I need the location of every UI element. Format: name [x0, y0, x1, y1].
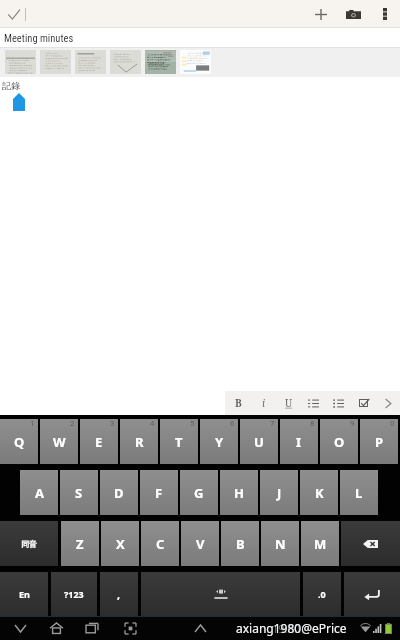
button[interactable]: Checklist [351, 391, 376, 415]
staticText: Z [76, 535, 84, 553]
staticText: 19:00 [272, 621, 301, 636]
button[interactable]: More formatting [376, 391, 400, 415]
button[interactable]: Space [141, 572, 300, 616]
button[interactable]: En [0, 572, 48, 616]
staticText: 3 [110, 419, 115, 428]
button[interactable]: K [300, 470, 338, 515]
button[interactable]: I [280, 419, 318, 464]
staticText: U [285, 396, 293, 410]
button[interactable]: B [221, 521, 259, 566]
button[interactable] [5, 50, 36, 74]
button[interactable] [145, 50, 176, 74]
button[interactable]: F [140, 470, 178, 515]
button[interactable]: A [20, 470, 58, 515]
staticText: B [235, 396, 242, 410]
staticText: 5 [190, 419, 195, 428]
button[interactable]: H [220, 470, 258, 515]
staticText: 7 [270, 419, 275, 428]
staticText: i [262, 396, 266, 410]
staticText: L [355, 484, 363, 502]
staticText: Meeting minutes [4, 32, 74, 44]
staticText: A [35, 484, 44, 502]
staticText: 2 [70, 419, 75, 428]
button[interactable]: J [260, 470, 298, 515]
staticText: E [95, 433, 103, 451]
button[interactable]: O [320, 419, 358, 464]
button[interactable] [180, 50, 211, 74]
staticText: W [53, 433, 66, 451]
staticText: 8 [310, 419, 315, 428]
staticText: G [194, 484, 204, 502]
staticText: R [135, 433, 144, 451]
button[interactable]: ?123 [51, 572, 97, 616]
staticText: 0 [390, 419, 395, 428]
button[interactable]: Bold [226, 391, 251, 415]
button[interactable]: .0 [303, 572, 341, 616]
button[interactable]: C [141, 521, 179, 566]
button[interactable]: R [120, 419, 158, 464]
button[interactable]: Done [0, 0, 28, 28]
button[interactable]: Bulleted list [326, 391, 351, 415]
staticText: U [254, 433, 264, 451]
button[interactable]: Back [8, 616, 32, 640]
staticText: 6 [230, 419, 235, 428]
staticText: T [175, 433, 183, 451]
button[interactable]: Recents [80, 616, 104, 640]
staticText: .0 [318, 588, 326, 600]
staticText: Q [14, 433, 25, 451]
button[interactable]: Backspace [341, 521, 400, 566]
staticText: J [277, 484, 282, 502]
button[interactable]: P [360, 419, 398, 464]
staticText: C [156, 535, 165, 553]
button[interactable]: Add [305, 0, 337, 28]
staticText: H [234, 484, 244, 502]
button[interactable]: Underline [276, 391, 301, 415]
button[interactable]: L [340, 470, 378, 515]
button[interactable]: V [181, 521, 219, 566]
button[interactable] [110, 50, 141, 74]
button[interactable] [40, 50, 71, 74]
staticText: F [155, 484, 163, 502]
staticText: En [19, 588, 30, 600]
button[interactable]: Z [61, 521, 99, 566]
staticText: B [236, 535, 245, 553]
button[interactable]: Y [200, 419, 238, 464]
button[interactable]: Screenshot [118, 616, 142, 640]
staticText: I [296, 433, 302, 451]
button[interactable]: T [160, 419, 198, 464]
button[interactable]: 同音 [0, 521, 58, 566]
button[interactable]: Home [44, 616, 68, 640]
button[interactable]: Q [0, 419, 38, 464]
staticText: S [75, 484, 83, 502]
button[interactable]: Expand [188, 616, 212, 640]
staticText: N [275, 535, 286, 553]
button[interactable]: W [40, 419, 78, 464]
staticText: X [116, 535, 125, 553]
button[interactable]: More options [369, 0, 400, 28]
button[interactable]: Numbered list [301, 391, 326, 415]
button[interactable]: U [240, 419, 278, 464]
staticText: K [315, 484, 324, 502]
staticText: V [196, 535, 205, 553]
button[interactable]: Enter [344, 572, 400, 616]
button[interactable]: N [261, 521, 299, 566]
staticText: 記錄 [2, 80, 20, 91]
staticText: P [375, 433, 384, 451]
staticText: 同音 [21, 539, 37, 549]
staticText: D [114, 484, 124, 502]
button[interactable]: , [100, 572, 138, 616]
button[interactable]: D [100, 470, 138, 515]
button[interactable]: E [80, 419, 118, 464]
button[interactable]: M [301, 521, 339, 566]
staticText: M [314, 535, 327, 553]
button[interactable]: X [101, 521, 139, 566]
staticText: axiang1980@ePrice [236, 620, 347, 636]
button[interactable] [75, 50, 106, 74]
staticText: 9 [350, 419, 355, 428]
staticText: 1 [30, 419, 35, 428]
button[interactable]: G [180, 470, 218, 515]
button[interactable]: Camera [337, 0, 369, 28]
button[interactable]: S [60, 470, 98, 515]
staticText: ?123 [64, 588, 84, 600]
button[interactable]: Italic [251, 391, 276, 415]
